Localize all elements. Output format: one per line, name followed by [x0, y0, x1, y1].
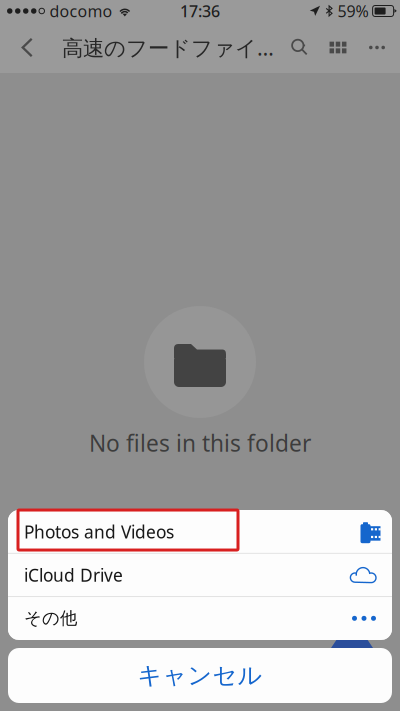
button[interactable]: Grid view	[319, 22, 357, 73]
staticText: 高速のフードファイ…	[62, 33, 274, 62]
button[interactable]: More	[359, 22, 395, 73]
staticText: Photos and Videos	[24, 520, 174, 543]
button[interactable]: Search	[280, 22, 318, 73]
staticText: iCloud Drive	[24, 563, 123, 586]
staticText: docomo	[49, 0, 112, 22]
staticText: 17:36	[180, 0, 220, 22]
button[interactable]: iCloud Drive	[8, 554, 392, 596]
staticText: 59%	[338, 0, 369, 22]
staticText: その他	[24, 608, 77, 629]
button[interactable]: キャンセル	[8, 648, 392, 703]
staticText: No files in this folder	[89, 428, 311, 458]
button[interactable]: Photos and Videos	[8, 510, 392, 553]
button[interactable]: その他	[8, 597, 392, 639]
staticText: キャンセル	[137, 661, 262, 690]
button[interactable]: Back	[5, 22, 49, 73]
